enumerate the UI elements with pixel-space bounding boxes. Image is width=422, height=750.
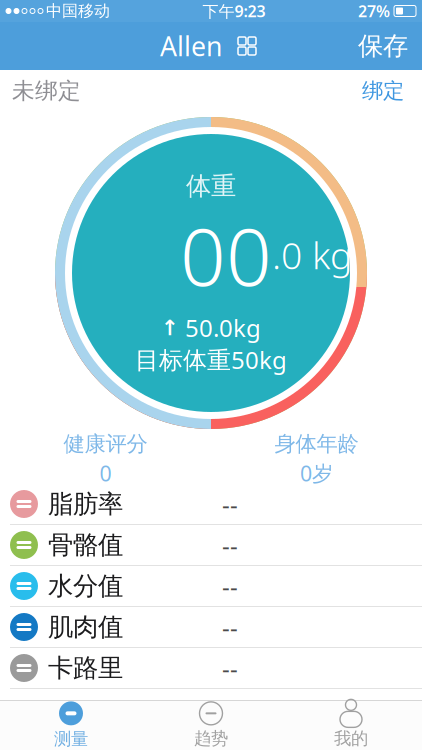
staticText: -- [222,529,238,561]
button[interactable]: 保存 [344,22,422,69]
staticText: 27% [358,0,390,22]
button[interactable]: 水分值 [0,566,422,607]
staticText: 骨骼值 [48,529,123,560]
staticText: 脂肪率 [48,488,123,519]
staticText: 测量 [54,728,88,750]
button[interactable]: 肌肉值 [0,607,422,648]
staticText: 肌肉值 [48,611,123,642]
staticText: 50.0kg [185,312,261,344]
button[interactable]: 绑定 [356,72,410,110]
button[interactable]: 骨骼值 [0,525,422,566]
staticText: 未绑定 [12,77,81,105]
staticText: 健康评分 [63,431,147,457]
staticText: 00 [180,202,272,308]
staticText: -- [222,570,238,602]
staticText: 卡路里 [48,652,123,683]
staticText: 我的 [334,728,368,749]
button[interactable]: 脂肪率 [0,484,422,525]
staticText: -- [222,611,238,643]
staticText: 水分值 [48,570,123,601]
staticText: Allen [160,28,222,64]
staticText: 体重 [186,170,236,202]
staticText: .0 kg [272,230,352,279]
staticText: 0 [99,459,111,487]
staticText: 保存 [358,30,408,61]
staticText: 下午9:23 [202,0,265,22]
button[interactable]: Grid view [232,31,262,61]
staticText: ↑ [161,316,179,340]
button[interactable]: 卡路里 [0,648,422,689]
staticText: 中国移动 [46,1,110,21]
staticText: 目标体重50kg [135,344,287,376]
staticText: 绑定 [362,78,404,104]
staticText: -- [222,652,238,684]
button[interactable]: 趋势 [141,701,281,749]
button[interactable]: 我的 [281,701,421,749]
staticText: -- [222,488,238,520]
staticText: 身体年龄 [274,431,358,457]
staticText: 0岁 [300,459,333,487]
staticText: 趋势 [194,728,228,749]
button[interactable]: 测量 [1,701,141,749]
